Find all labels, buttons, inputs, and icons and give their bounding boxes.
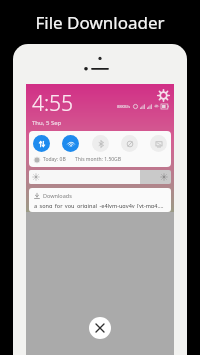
- button[interactable]: Clear all notifications: [89, 317, 111, 339]
- staticText: Today: 0B: [43, 156, 66, 163]
- button[interactable]: Brightness: [29, 170, 171, 184]
- staticText: This month: 1.50GB: [75, 156, 121, 163]
- staticText: 4:55: [32, 89, 74, 118]
- staticText: Downloads: [43, 192, 72, 199]
- staticText: Thu, 5 Sep: [32, 119, 62, 127]
- button[interactable]: Mobile data: [33, 135, 50, 152]
- button[interactable]: Bluetooth: [92, 135, 109, 152]
- button[interactable]: Do not disturb: [121, 135, 138, 152]
- button[interactable]: Downloads: [29, 188, 171, 212]
- staticText: a_song_for_you_original_-e4lym-ugv4y_[yt…: [34, 202, 166, 208]
- staticText: File Downloader: [0, 11, 200, 34]
- button[interactable]: Wi-Fi: [62, 135, 79, 152]
- staticText: 88KB/s: [117, 104, 131, 109]
- button[interactable]: Settings: [158, 90, 169, 101]
- button[interactable]: Screen cast: [150, 135, 167, 152]
